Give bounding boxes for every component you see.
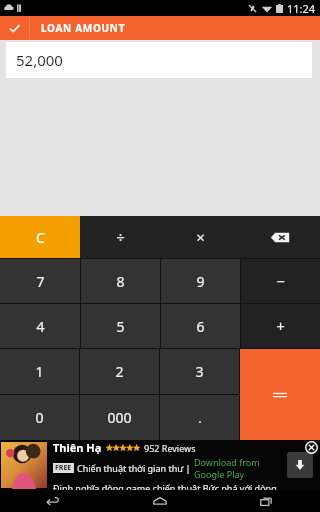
button[interactable]: Close ad (305, 441, 318, 454)
button[interactable]: × (160, 216, 240, 258)
staticText: 4 (36, 317, 45, 336)
staticText: C (36, 228, 45, 247)
button[interactable]: 4 (0, 304, 80, 348)
staticText: 3 (195, 362, 204, 381)
staticText: × (196, 227, 205, 247)
staticText: Chiến thuật thời gian thư | (77, 462, 191, 474)
staticText: − (276, 271, 285, 291)
button[interactable]: 000 (80, 395, 159, 440)
button[interactable]: 6 (161, 304, 240, 348)
button[interactable]: LOAN AMOUNT (30, 16, 320, 40)
button[interactable]: + (241, 304, 320, 348)
staticText: 952 Reviews (144, 442, 196, 454)
staticText: 9 (196, 272, 205, 291)
button[interactable]: 8 (81, 259, 160, 303)
button[interactable]: Equals (240, 349, 320, 440)
staticText: ÷ (116, 227, 125, 247)
staticText: + (276, 316, 285, 336)
button[interactable]: 5 (81, 304, 160, 348)
button[interactable]: Confirm (0, 16, 29, 40)
button[interactable]: . (160, 395, 239, 440)
button[interactable]: 52,000 (6, 42, 312, 78)
button[interactable]: − (241, 259, 320, 303)
button[interactable]: ÷ (80, 216, 160, 258)
button[interactable]: Recent apps (213, 490, 320, 512)
button[interactable]: 0 (0, 395, 79, 440)
staticText: Định nghĩa dòng game chiến thuật Bức phá… (53, 482, 287, 490)
button[interactable]: 1 (0, 349, 79, 394)
button[interactable]: C (0, 216, 80, 258)
button[interactable]: 9 (161, 259, 240, 303)
button[interactable]: Download (287, 452, 313, 478)
button[interactable]: 2 (80, 349, 159, 394)
staticText: . (198, 409, 202, 427)
staticText: 7 (36, 272, 45, 291)
staticText: Download from Google Play (194, 456, 287, 480)
button[interactable]: Back (0, 490, 106, 512)
staticText: 0 (35, 408, 44, 427)
staticText: 000 (107, 408, 132, 427)
button[interactable]: 3 (160, 349, 239, 394)
button[interactable]: Home (106, 490, 213, 512)
staticText: FREE (55, 463, 72, 473)
button[interactable]: Backspace (240, 216, 320, 258)
staticText: 11:24 (287, 1, 316, 16)
staticText: 52,000 (16, 50, 63, 70)
staticText: 6 (196, 317, 205, 336)
staticText: LOAN AMOUNT (41, 21, 126, 35)
button[interactable]: Thiên Hạ (0, 440, 320, 490)
staticText: 5 (116, 317, 125, 336)
staticText: 8 (116, 272, 125, 291)
staticText: 2 (115, 362, 124, 381)
staticText: Thiên Hạ (53, 440, 102, 455)
button[interactable]: 7 (0, 259, 80, 303)
staticText: 1 (35, 362, 44, 381)
